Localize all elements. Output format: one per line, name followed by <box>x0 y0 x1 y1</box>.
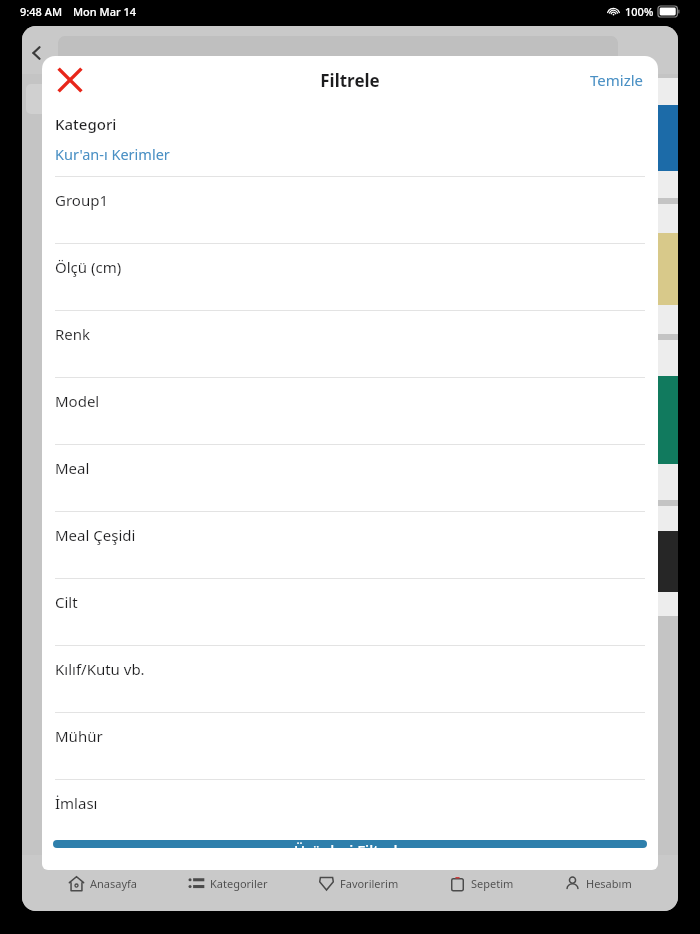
button[interactable]: Anasayfa <box>64 869 142 898</box>
button[interactable]: Group1 <box>42 177 658 243</box>
button[interactable]: Kapat <box>46 56 94 104</box>
staticText: Hesabım <box>586 876 632 891</box>
button[interactable]: Cilt <box>42 579 658 645</box>
staticText: Model <box>55 391 100 411</box>
button[interactable]: Meal <box>42 445 658 511</box>
button[interactable]: Meal Çeşidi <box>42 512 658 578</box>
staticText: Anasayfa <box>90 876 138 891</box>
button[interactable]: Kur'an-ı Kerimler <box>55 144 170 164</box>
staticText: Mühür <box>55 726 103 746</box>
button[interactable]: İmlası <box>42 780 658 840</box>
staticText: Kategoriler <box>210 876 268 891</box>
staticText: Ölçü (cm) <box>55 257 122 277</box>
staticText: Meal <box>55 458 90 478</box>
button[interactable]: Mühür <box>42 713 658 779</box>
staticText: Kategori <box>55 114 117 134</box>
staticText: Temizle <box>590 70 644 90</box>
button[interactable]: Favorilerim <box>314 869 403 898</box>
staticText: Cilt <box>55 592 78 612</box>
button[interactable]: Temizle <box>576 60 658 100</box>
staticText: 9:48 AM <box>20 4 63 19</box>
button[interactable]: Sepetim <box>445 869 518 898</box>
button[interactable]: Model <box>42 378 658 444</box>
staticText: Meal Çeşidi <box>55 525 136 545</box>
staticText: Kılıf/Kutu vb. <box>55 659 145 679</box>
staticText: İmlası <box>55 793 98 813</box>
button[interactable]: Ürünleri Filtrele <box>53 840 647 848</box>
button[interactable]: Kategoriler <box>184 869 272 898</box>
staticText: Renk <box>55 324 91 344</box>
staticText: Favorilerim <box>340 876 399 891</box>
staticText: 100% <box>625 4 654 19</box>
staticText: Group1 <box>55 190 108 210</box>
staticText: Ürünleri Filtrele <box>294 840 407 848</box>
staticText: Kur'an-ı Kerimler <box>55 144 170 164</box>
staticText: Sepetim <box>471 876 514 891</box>
button[interactable]: Hesabım <box>560 869 636 898</box>
button[interactable]: Renk <box>42 311 658 377</box>
staticText: Filtrele <box>320 69 380 92</box>
staticText: Mon Mar 14 <box>73 4 137 19</box>
button[interactable]: Ölçü (cm) <box>42 244 658 310</box>
button[interactable]: Kılıf/Kutu vb. <box>42 646 658 712</box>
